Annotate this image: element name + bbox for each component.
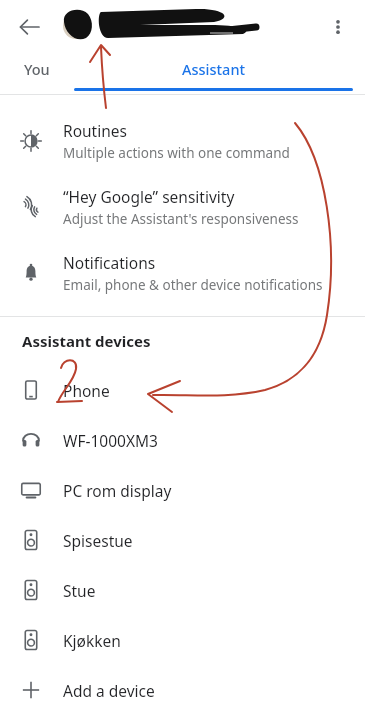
button[interactable]: Kjøkken: [0, 615, 365, 665]
button[interactable]: Back: [11, 9, 47, 45]
button[interactable]: You: [12, 53, 62, 94]
button[interactable]: Phone: [0, 365, 365, 415]
button[interactable]: Spisestue: [0, 515, 365, 565]
staticText: Add a device: [63, 680, 155, 701]
button[interactable]: More options: [320, 9, 356, 45]
button[interactable]: Routines: [0, 108, 365, 174]
staticText: WF-1000XM3: [63, 430, 158, 451]
button[interactable]: Notifications: [0, 240, 365, 306]
button[interactable]: Stue: [0, 565, 365, 615]
staticText: “Hey Google” sensitivity: [63, 186, 235, 207]
staticText: Email, phone & other device notification…: [63, 276, 323, 294]
staticText: You: [24, 59, 50, 79]
button[interactable]: Add a device: [0, 665, 365, 715]
staticText: Phone: [63, 380, 110, 401]
staticText: Routines: [63, 120, 127, 141]
button[interactable]: Assistant: [62, 53, 365, 94]
staticText: Assistant: [182, 59, 246, 79]
staticText: Notifications: [63, 252, 156, 273]
staticText: PC rom display: [63, 480, 172, 501]
staticText: Spisestue: [63, 530, 133, 551]
staticText: Adjust the Assistant's responsiveness: [63, 210, 299, 228]
staticText: Multiple actions with one command: [63, 144, 290, 162]
staticText: Assistant devices: [22, 331, 151, 351]
button[interactable]: WF-1000XM3: [0, 415, 365, 465]
staticText: Kjøkken: [63, 630, 121, 651]
staticText: Stue: [63, 580, 96, 601]
button[interactable]: PC rom display: [0, 465, 365, 515]
button[interactable]: “Hey Google” sensitivity: [0, 174, 365, 240]
